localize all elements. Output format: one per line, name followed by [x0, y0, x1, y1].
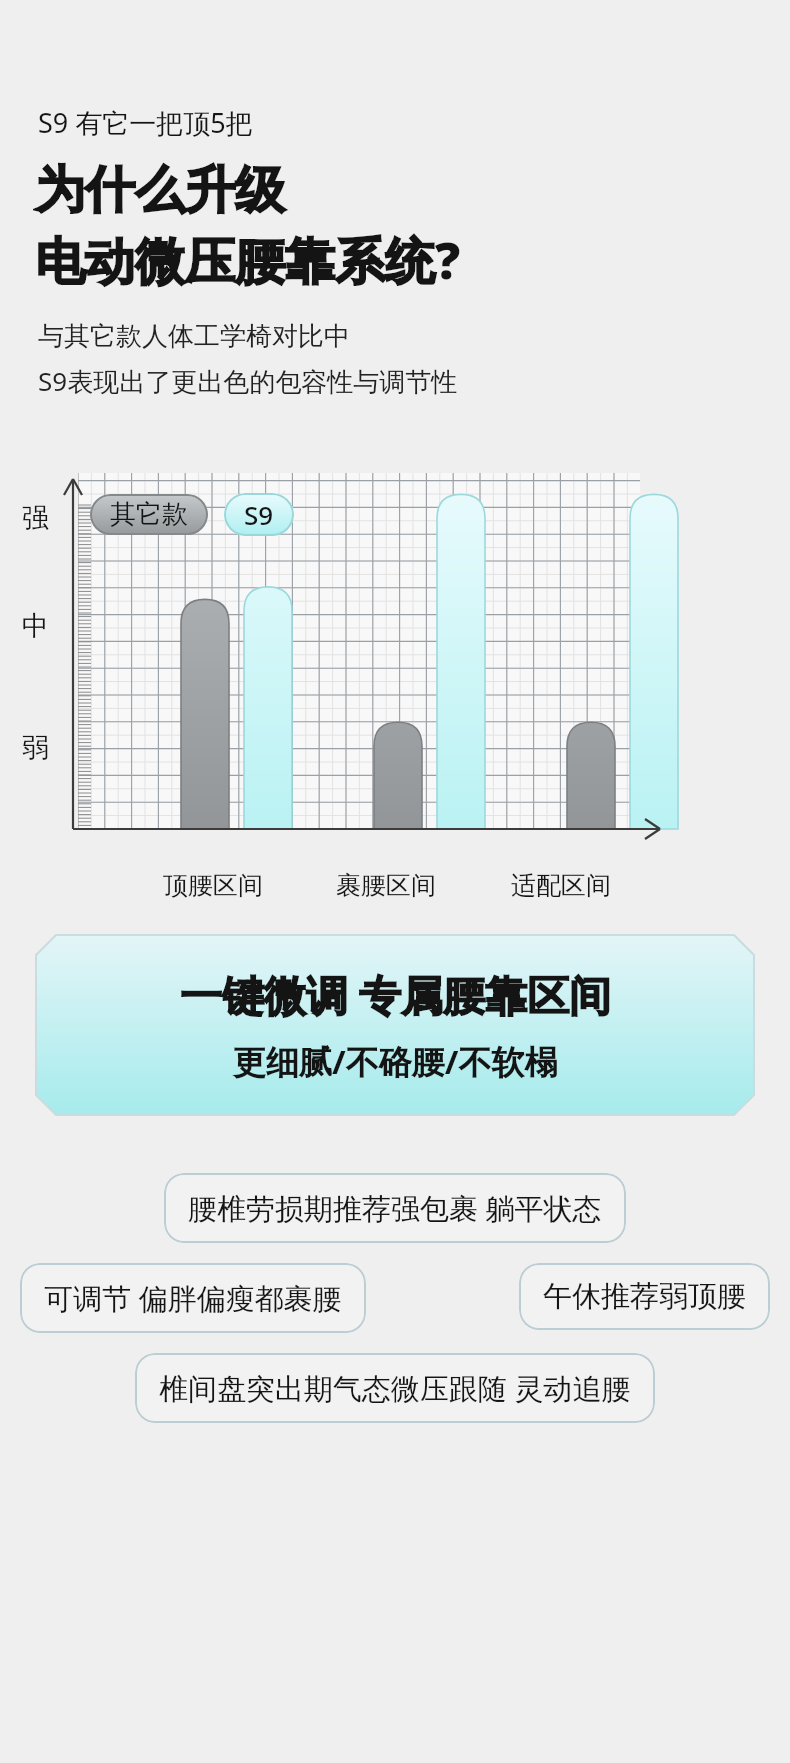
button[interactable]: 可调节 偏胖偏瘦都裹腰	[20, 1263, 366, 1333]
staticText: S9	[244, 497, 274, 532]
button[interactable]: 椎间盘突出期气态微压跟随 灵动追腰	[135, 1353, 655, 1423]
staticText: 裹腰区间	[336, 870, 436, 901]
staticText: 电动微压腰靠系统?	[35, 226, 461, 294]
button[interactable]: S9	[224, 493, 294, 536]
button[interactable]: 其它款	[90, 494, 208, 535]
button[interactable]: 一键微调 专属腰靠区间	[36, 935, 754, 1115]
staticText: 午休推荐弱顶腰	[543, 1278, 746, 1315]
staticText: 一键微调 专属腰靠区间	[180, 966, 611, 1023]
staticText: 可调节 偏胖偏瘦都裹腰	[44, 1278, 342, 1318]
staticText: 其它款	[110, 498, 188, 531]
staticText: 腰椎劳损期推荐强包裹 躺平状态	[188, 1188, 602, 1228]
staticText: 为什么升级	[35, 159, 285, 222]
staticText: 椎间盘突出期气态微压跟随 灵动追腰	[159, 1368, 631, 1408]
staticText: 弱	[22, 731, 49, 765]
staticText: 强	[22, 501, 49, 535]
staticText: 与其它款人体工学椅对比中	[38, 320, 350, 353]
staticText: S9表现出了更出色的包容性与调节性	[38, 363, 458, 399]
staticText: 适配区间	[511, 870, 611, 901]
button[interactable]: 腰椎劳损期推荐强包裹 躺平状态	[164, 1173, 626, 1243]
staticText: 中	[22, 609, 49, 643]
staticText: 更细腻/不硌腰/不软榻	[233, 1039, 558, 1084]
button[interactable]: 午休推荐弱顶腰	[519, 1263, 770, 1330]
staticText: 顶腰区间	[163, 870, 263, 901]
staticText: S9 有它一把顶5把	[38, 104, 253, 141]
